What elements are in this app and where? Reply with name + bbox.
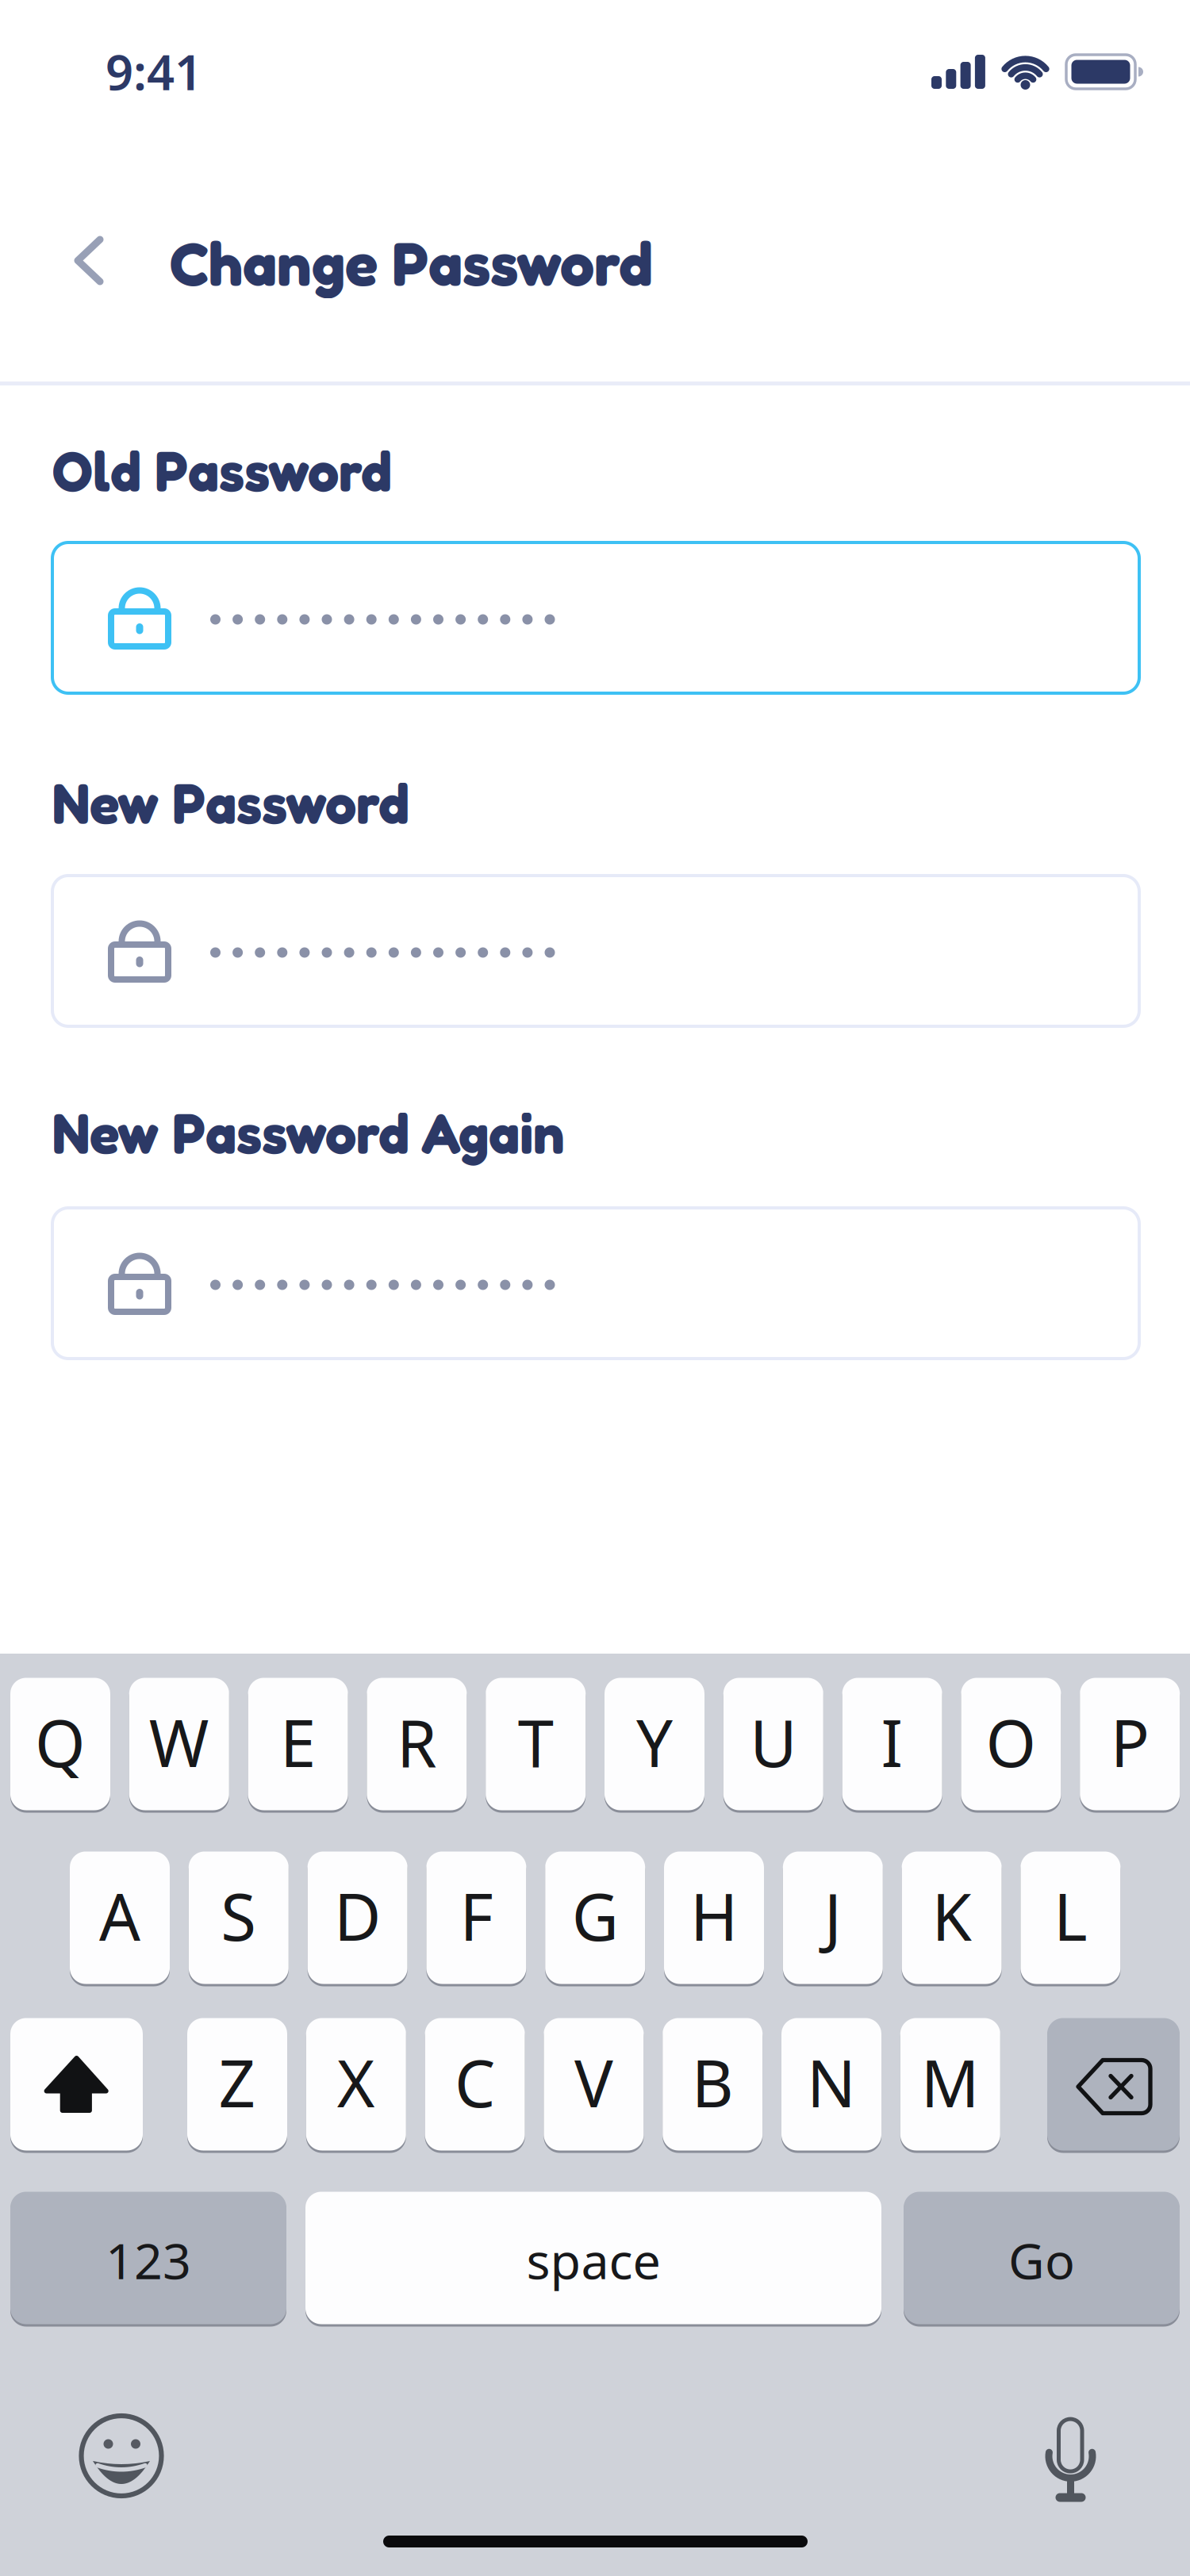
staticText: S (221, 1873, 256, 1959)
staticText: W (149, 1699, 209, 1785)
staticText: F (460, 1873, 493, 1959)
staticText: Go (1008, 2227, 1075, 2293)
button[interactable]: Delete (1047, 2018, 1180, 2153)
button[interactable]: G (545, 1851, 645, 1986)
button[interactable]: E (248, 1678, 348, 1813)
button[interactable]: N (781, 2018, 881, 2153)
staticText: R (397, 1699, 437, 1785)
staticText: New Password (52, 769, 409, 836)
staticText: V (574, 2039, 613, 2125)
button[interactable]: Z (187, 2018, 287, 2153)
button[interactable]: W (129, 1678, 229, 1813)
staticText: K (932, 1873, 972, 1959)
staticText: A (99, 1873, 140, 1959)
button[interactable]: L (1021, 1851, 1121, 1986)
button[interactable]: space (305, 2192, 881, 2327)
staticText: P (1110, 1699, 1149, 1785)
button[interactable]: Y (605, 1678, 704, 1813)
staticText: Old Password (52, 437, 392, 504)
staticText: B (692, 2039, 734, 2125)
staticText: 123 (106, 2227, 191, 2293)
button[interactable]: Q (10, 1678, 110, 1813)
staticText: C (455, 2039, 495, 2125)
button[interactable]: Back (53, 224, 125, 297)
button[interactable]: New Password (52, 876, 1139, 1026)
staticText: G (572, 1873, 619, 1959)
button[interactable]: New Password Again (52, 1208, 1139, 1359)
button[interactable]: P (1080, 1678, 1180, 1813)
button[interactable]: D (307, 1851, 407, 1986)
button[interactable]: C (425, 2018, 525, 2153)
button[interactable]: M (900, 2018, 1000, 2153)
button[interactable]: K (902, 1851, 1002, 1986)
staticText: O (986, 1699, 1036, 1785)
button[interactable]: Dictate (1038, 2415, 1103, 2504)
button[interactable]: B (663, 2018, 763, 2153)
staticText: X (337, 2039, 375, 2125)
button[interactable]: Old Password (52, 542, 1139, 693)
staticText: space (526, 2227, 660, 2293)
button[interactable]: A (70, 1851, 170, 1986)
button[interactable]: 123 (10, 2192, 286, 2327)
button[interactable]: Go (904, 2192, 1180, 2327)
staticText: D (334, 1873, 381, 1959)
staticText: E (280, 1699, 316, 1785)
button[interactable]: V (544, 2018, 644, 2153)
button[interactable]: S (189, 1851, 289, 1986)
staticText: New Password Again (52, 1099, 565, 1166)
button[interactable]: U (723, 1678, 823, 1813)
staticText: I (881, 1699, 903, 1785)
staticText: J (824, 1873, 842, 1959)
staticText: N (807, 2039, 856, 2125)
staticText: M (921, 2039, 980, 2125)
button[interactable]: T (486, 1678, 586, 1813)
staticText: L (1053, 1873, 1088, 1959)
staticText: Change Password (170, 226, 653, 299)
staticText: Q (35, 1699, 86, 1785)
staticText: T (518, 1699, 554, 1785)
button[interactable]: Shift (10, 2018, 143, 2153)
staticText: H (690, 1873, 738, 1959)
button[interactable]: Emoji (77, 2411, 166, 2501)
button[interactable]: J (783, 1851, 883, 1986)
staticText: Z (219, 2039, 256, 2125)
button[interactable]: H (664, 1851, 764, 1986)
button[interactable]: I (842, 1678, 942, 1813)
button[interactable]: F (426, 1851, 526, 1986)
button[interactable]: O (961, 1678, 1061, 1813)
staticText: 9:41 (106, 39, 202, 104)
button[interactable]: X (306, 2018, 406, 2153)
staticText: Y (636, 1699, 673, 1785)
button[interactable]: R (367, 1678, 467, 1813)
staticText: U (750, 1699, 797, 1785)
